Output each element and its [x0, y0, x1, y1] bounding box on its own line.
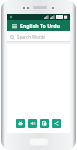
button[interactable]: Open navigation drawer: [10, 22, 18, 30]
button[interactable]: Share: [52, 119, 61, 128]
button[interactable]: Copy word: [40, 119, 49, 128]
button[interactable]: Search Words: [7, 31, 70, 42]
staticText: Search Words: [17, 34, 46, 40]
staticText: English To Urdu Dictionary: [20, 22, 67, 29]
button[interactable]: Speak word: [28, 119, 37, 128]
button[interactable]: Install app: [16, 119, 25, 128]
